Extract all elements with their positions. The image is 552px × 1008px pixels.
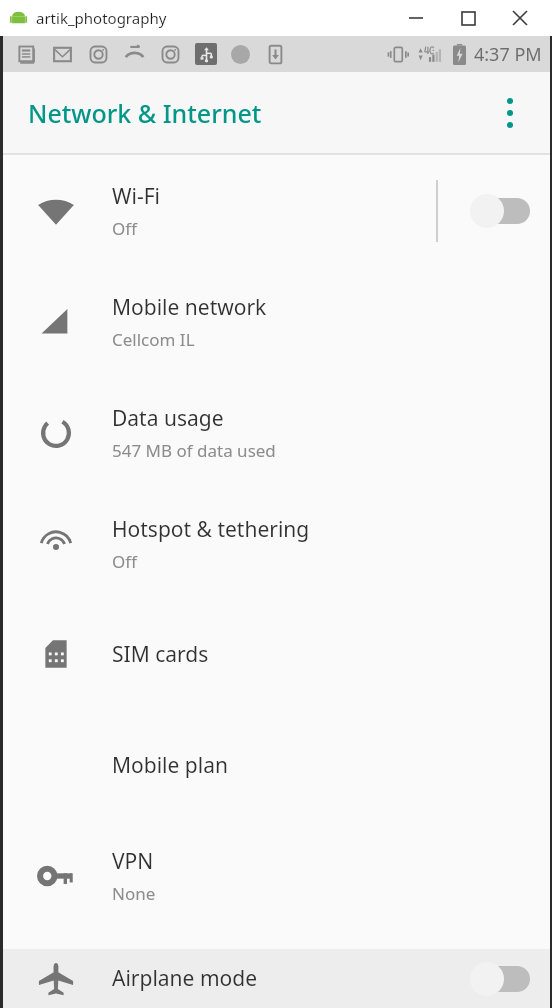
staticText: None (112, 882, 156, 905)
button[interactable]: Data usage (0, 377, 552, 489)
staticText: Wi-Fi (112, 182, 161, 211)
staticText: Data usage (112, 404, 224, 433)
button[interactable]: Maximize (450, 0, 486, 36)
staticText: 547 MB of data used (112, 439, 276, 462)
staticText: Cellcom IL (112, 328, 195, 351)
button[interactable]: More options (488, 91, 532, 135)
button[interactable]: Wi-Fi (0, 155, 552, 267)
button[interactable]: Minimize (398, 0, 434, 36)
button[interactable]: VPN (0, 821, 552, 931)
staticText: 4:37 PM (474, 42, 542, 67)
staticText: Mobile plan (112, 751, 228, 780)
button[interactable]: Airplane mode (0, 949, 552, 1008)
staticText: Network & Internet (28, 96, 262, 130)
button[interactable]: SIM cards (0, 599, 552, 709)
button[interactable]: Wi-Fi toggle (466, 189, 530, 233)
staticText: Off (112, 217, 137, 240)
staticText: VPN (112, 847, 154, 876)
staticText: Hotspot & tethering (112, 515, 310, 544)
button[interactable]: Close (502, 0, 538, 36)
staticText: Mobile network (112, 293, 267, 322)
button[interactable]: Hotspot & tethering (0, 489, 552, 599)
button[interactable]: Mobile network (0, 267, 552, 377)
staticText: Off (112, 550, 137, 573)
staticText: artik_photography (36, 8, 167, 28)
button[interactable]: Mobile plan (0, 709, 552, 821)
staticText: Airplane mode (112, 964, 258, 993)
staticText: SIM cards (112, 640, 209, 669)
button[interactable]: Airplane mode toggle (466, 957, 530, 1001)
